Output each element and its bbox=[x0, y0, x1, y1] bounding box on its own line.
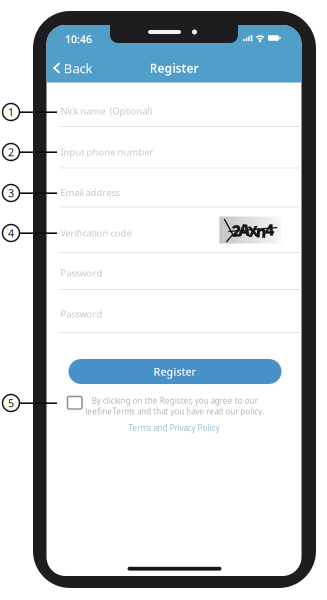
staticText: Input phone number bbox=[60, 146, 153, 158]
staticText: 2 bbox=[232, 220, 241, 241]
staticText: 4 bbox=[8, 226, 14, 240]
staticText: 10:46 bbox=[65, 32, 92, 46]
staticText: Verification code bbox=[60, 227, 131, 239]
staticText: A bbox=[239, 219, 251, 240]
staticText: Register bbox=[153, 364, 196, 379]
button[interactable]: Terms and Privacy Policy bbox=[46, 422, 301, 434]
staticText: Email address bbox=[60, 186, 119, 199]
staticText: X bbox=[248, 221, 259, 241]
staticText: Password bbox=[60, 267, 102, 279]
staticText: 3 bbox=[8, 186, 14, 200]
staticText: Terms and Privacy Policy bbox=[128, 423, 219, 433]
button[interactable]: Agree to terms bbox=[67, 396, 82, 409]
button[interactable]: Back bbox=[53, 59, 105, 77]
staticText: 1 bbox=[8, 105, 14, 119]
staticText: By clicking on the Register, you agree t… bbox=[85, 395, 264, 417]
staticText: Nick name (Optional) bbox=[60, 105, 152, 117]
staticText: 4 bbox=[265, 219, 274, 240]
staticText: n bbox=[256, 221, 267, 242]
staticText: Register bbox=[149, 60, 198, 76]
staticText: 2 bbox=[8, 145, 14, 159]
button[interactable]: Register bbox=[68, 359, 281, 384]
staticText: 5 bbox=[8, 396, 14, 410]
staticText: Back bbox=[64, 59, 93, 77]
staticText: Password bbox=[60, 308, 102, 320]
